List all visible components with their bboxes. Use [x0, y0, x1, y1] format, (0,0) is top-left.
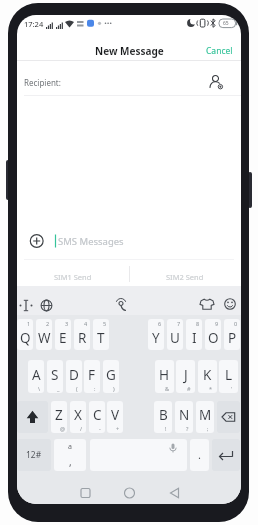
- staticText: X: [74, 406, 82, 424]
- button[interactable]: L: [219, 360, 238, 393]
- button[interactable]: K: [198, 360, 217, 393]
- staticText: 2: [46, 320, 50, 327]
- staticText: Y: [152, 329, 160, 347]
- button[interactable]: 4: [74, 319, 90, 350]
- button[interactable]: M: [196, 401, 214, 433]
- staticText: 3: [65, 320, 69, 327]
- button[interactable]: 12#: [17, 439, 51, 471]
- button[interactable]: [76, 483, 95, 502]
- staticText: /: [80, 425, 83, 432]
- staticText: Q: [20, 329, 31, 347]
- staticText: &: [165, 385, 170, 392]
- button[interactable]: D: [66, 360, 82, 393]
- staticText: ?: [186, 425, 189, 432]
- staticText: 4: [84, 320, 88, 327]
- staticText: O: [208, 329, 219, 347]
- staticText: Cancel: [206, 45, 233, 57]
- button[interactable]: SIM2 Send: [129, 265, 241, 288]
- button[interactable]: Cancel: [206, 45, 233, 57]
- staticText: -: [99, 425, 101, 432]
- button[interactable]: 3: [55, 319, 71, 350]
- staticText: S: [51, 366, 59, 384]
- staticText: 65: [223, 20, 229, 27]
- staticText: .: [198, 447, 201, 462]
- button[interactable]: F: [84, 360, 100, 393]
- staticText: *: [209, 385, 213, 392]
- button[interactable]: a: [54, 439, 86, 471]
- staticText: G: [106, 366, 116, 384]
- button[interactable]: V: [107, 401, 123, 433]
- button[interactable]: 9: [205, 319, 221, 350]
- button[interactable]: 7: [167, 319, 183, 350]
- staticText: Z: [55, 406, 63, 424]
- staticText: _: [57, 385, 60, 392]
- button[interactable]: .: [190, 439, 209, 471]
- button[interactable]: A: [28, 360, 44, 393]
- staticText: M: [199, 406, 212, 424]
- staticText: SIM2 Send: [166, 272, 204, 282]
- button[interactable]: S: [47, 360, 63, 393]
- button[interactable]: [90, 439, 187, 471]
- staticText: 8: [196, 320, 200, 327]
- staticText: 7: [177, 320, 181, 327]
- staticText: 5: [103, 320, 107, 327]
- button[interactable]: J: [176, 360, 195, 393]
- staticText: E: [59, 329, 67, 347]
- staticText: D: [69, 366, 79, 384]
- staticText: K: [203, 366, 212, 384]
- staticText: \: [38, 385, 41, 392]
- staticText: a: [68, 442, 72, 452]
- button[interactable]: 6: [148, 319, 164, 350]
- staticText: SMS Messages: [58, 235, 124, 248]
- staticText: ': [231, 385, 233, 392]
- staticText: L: [225, 366, 233, 384]
- button[interactable]: 1: [17, 319, 33, 350]
- button[interactable]: [120, 483, 139, 502]
- button[interactable]: 2: [36, 319, 52, 350]
- button[interactable]: 5: [93, 319, 109, 350]
- staticText: Recipient:: [24, 77, 61, 88]
- button[interactable]: X: [70, 401, 86, 433]
- button[interactable]: B: [154, 401, 172, 433]
- staticText: T: [97, 329, 105, 347]
- button[interactable]: N: [175, 401, 193, 433]
- staticText: J: [184, 366, 188, 384]
- button[interactable]: SIM1 Send: [17, 265, 129, 288]
- button[interactable]: [165, 483, 184, 502]
- staticText: 17:24: [24, 19, 44, 29]
- staticText: ): [113, 385, 115, 392]
- staticText: U: [170, 329, 180, 347]
- staticText: H: [159, 366, 170, 384]
- staticText: W: [38, 329, 51, 347]
- staticText: #: [187, 385, 191, 392]
- staticText: B: [159, 406, 168, 424]
- staticText: 12#: [26, 449, 42, 461]
- button[interactable]: C: [89, 401, 105, 433]
- staticText: @: [60, 425, 65, 432]
- staticText: New Message: [95, 44, 164, 58]
- staticText: R: [78, 329, 87, 347]
- button[interactable]: [212, 439, 240, 471]
- button[interactable]: Recipient:: [17, 61, 241, 95]
- staticText: :: [94, 385, 96, 392]
- staticText: 0: [234, 320, 238, 327]
- staticText: P: [228, 329, 237, 347]
- button[interactable]: [17, 401, 48, 433]
- button[interactable]: [217, 401, 240, 433]
- button[interactable]: 8: [186, 319, 202, 350]
- staticText: ,: [69, 455, 72, 469]
- staticText: C: [93, 406, 102, 424]
- staticText: SIM1 Send: [54, 272, 92, 282]
- staticText: 9: [215, 320, 219, 327]
- button[interactable]: Z: [51, 401, 67, 433]
- staticText: !: [165, 425, 167, 432]
- button[interactable]: [17, 229, 241, 258]
- staticText: 1: [27, 320, 31, 327]
- staticText: N: [179, 406, 190, 424]
- staticText: I: [192, 329, 197, 347]
- staticText: +: [116, 425, 120, 432]
- button[interactable]: H: [155, 360, 174, 393]
- button[interactable]: G: [103, 360, 119, 393]
- button[interactable]: 0: [224, 319, 240, 350]
- staticText: A: [32, 366, 41, 384]
